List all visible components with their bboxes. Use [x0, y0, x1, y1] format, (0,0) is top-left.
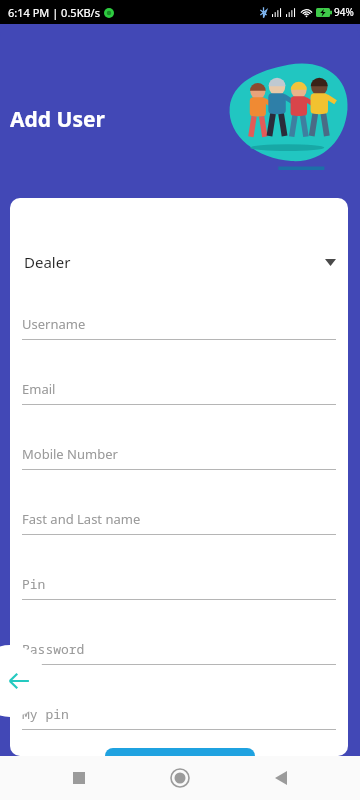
- staticText: Fast and Last name: [22, 510, 141, 528]
- button[interactable]: My pin: [22, 705, 336, 730]
- button[interactable]: Mobile Number: [22, 445, 336, 470]
- staticText: Password: [22, 640, 85, 658]
- button[interactable]: Back: [0, 645, 46, 717]
- button[interactable]: Home: [158, 756, 202, 800]
- staticText: Add User: [10, 105, 105, 134]
- staticText: 6:14 PM | 0.5KB/s: [8, 5, 100, 20]
- button[interactable]: Password: [22, 640, 336, 665]
- staticText: Pin: [22, 575, 46, 593]
- staticText: Mobile Number: [22, 445, 118, 463]
- staticText: Email: [22, 380, 56, 398]
- button[interactable]: Pin: [22, 575, 336, 600]
- button[interactable]: Fast and Last name: [22, 510, 336, 535]
- button[interactable]: Username: [22, 315, 336, 340]
- staticText: Dealer: [24, 252, 71, 272]
- button[interactable]: Back: [259, 756, 303, 800]
- button[interactable]: Dealer: [10, 242, 348, 282]
- staticText: My pin: [22, 705, 69, 723]
- staticText: 94%: [334, 5, 354, 19]
- staticText: Username: [22, 315, 86, 333]
- button[interactable]: Recents: [57, 756, 101, 800]
- button[interactable]: [105, 748, 255, 756]
- button[interactable]: Email: [22, 380, 336, 405]
